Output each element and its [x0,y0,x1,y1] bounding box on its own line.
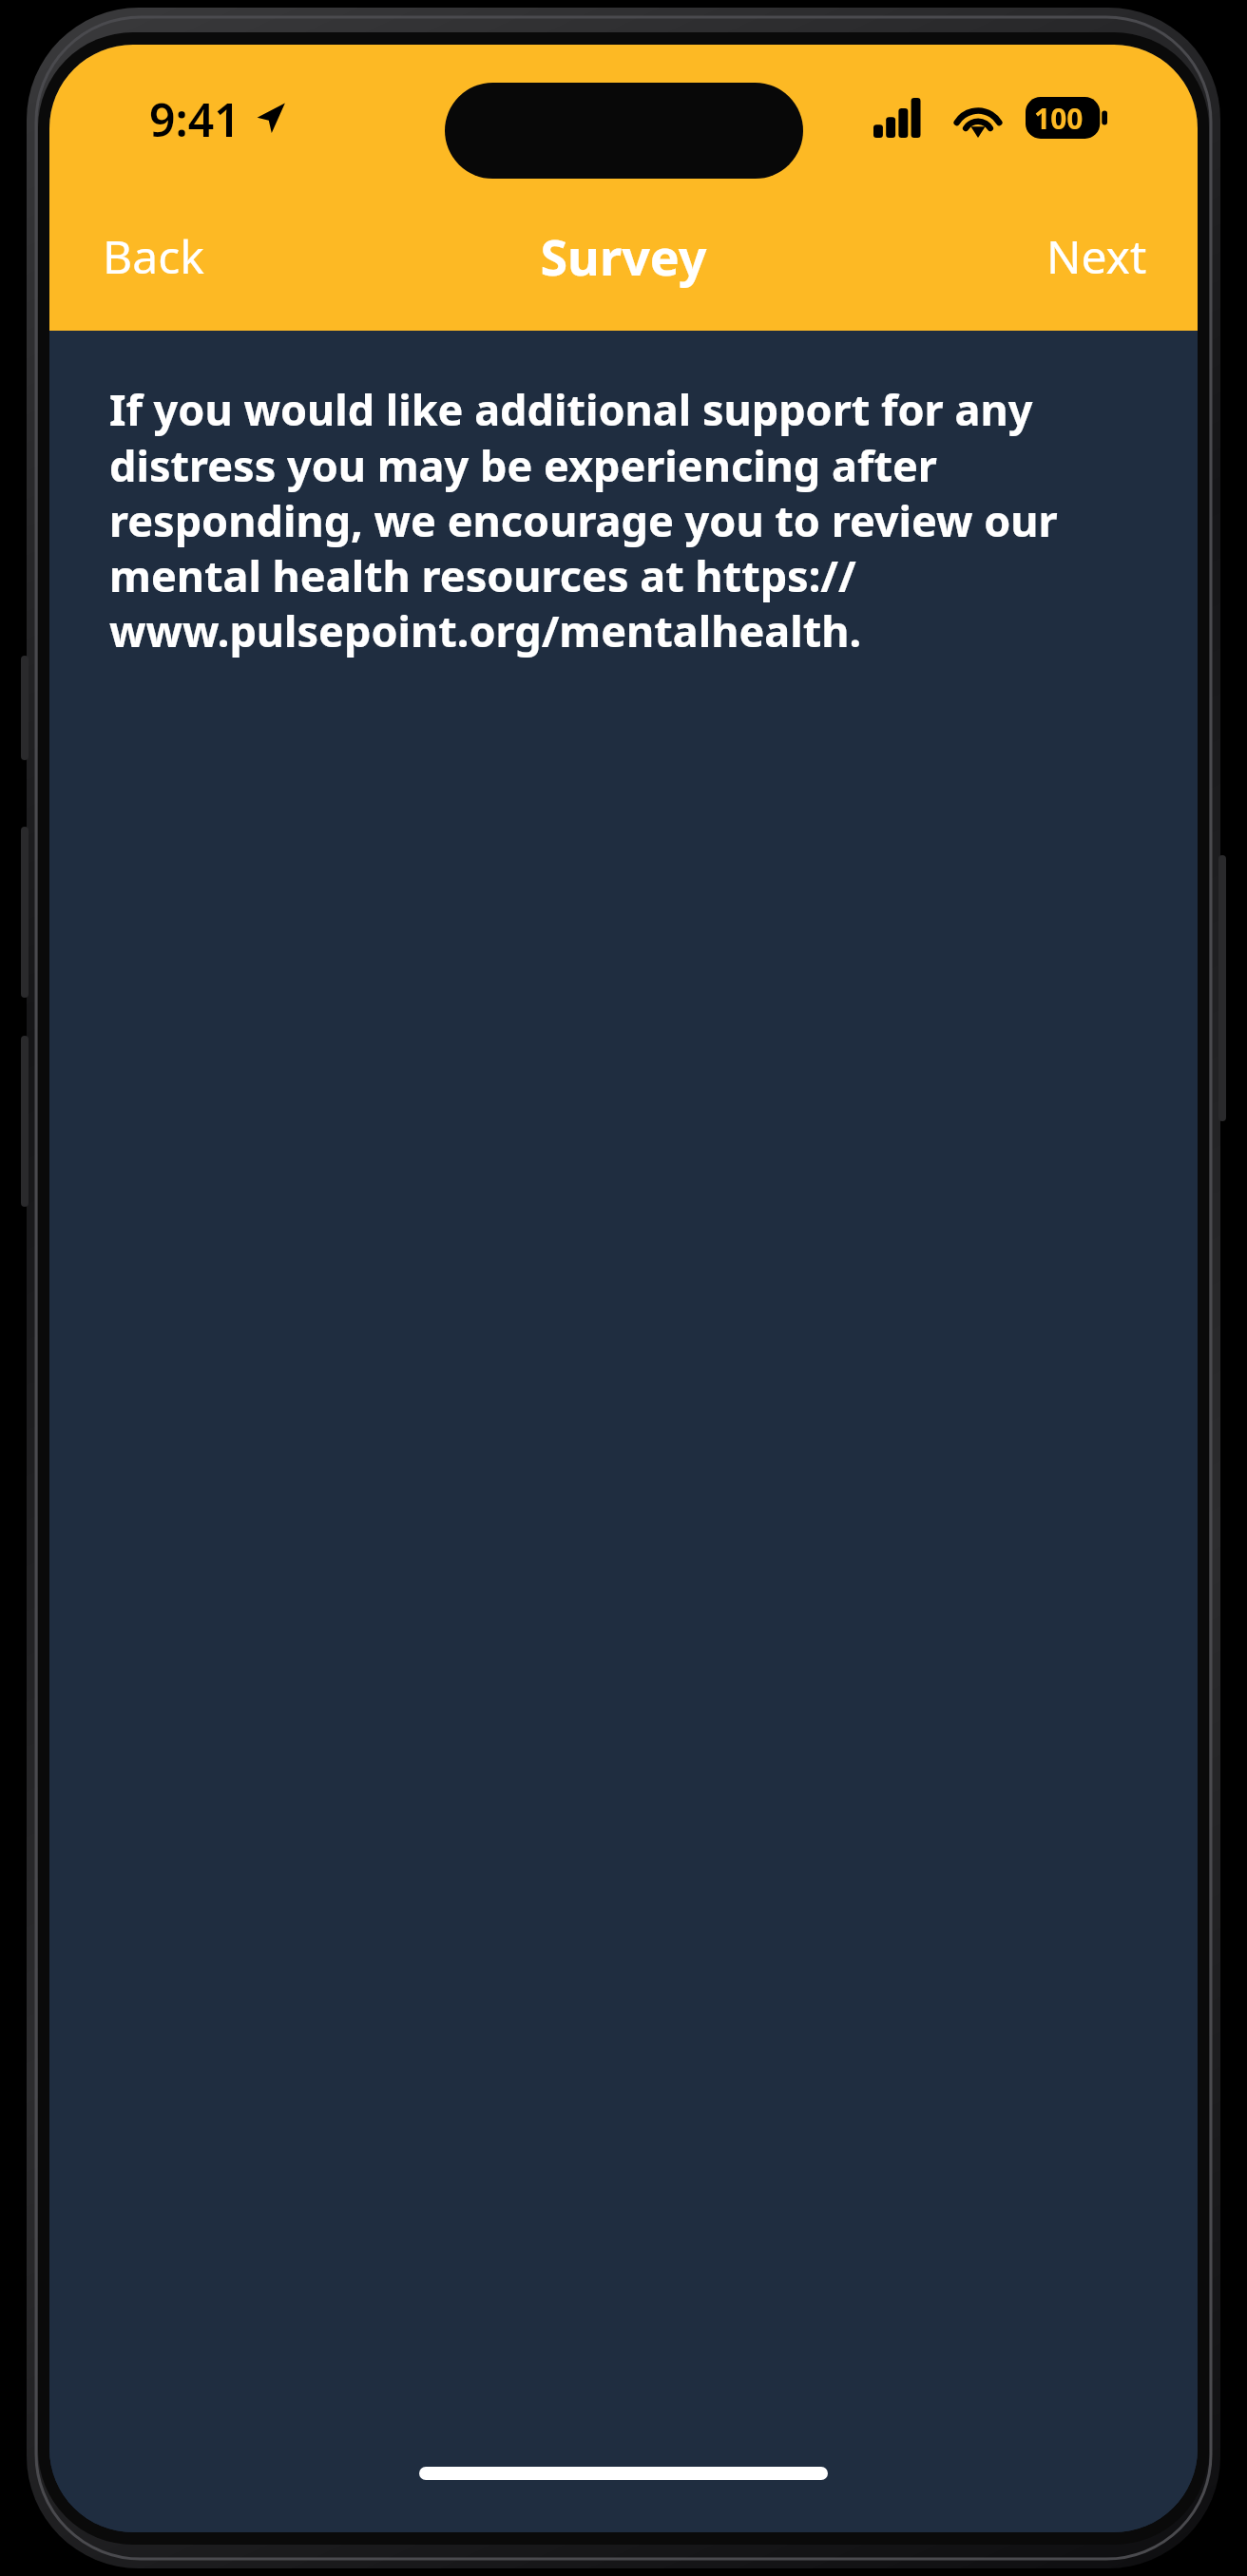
staticText: 100 [1034,99,1084,138]
button[interactable]: Back [49,210,227,302]
staticText: Back [103,225,204,287]
staticText: If you would like additional support for… [109,380,1081,659]
staticText: Next [1046,225,1147,287]
staticText: 9:41 [149,88,240,150]
staticText: Survey [49,222,1198,290]
button[interactable]: Next [1024,210,1198,302]
